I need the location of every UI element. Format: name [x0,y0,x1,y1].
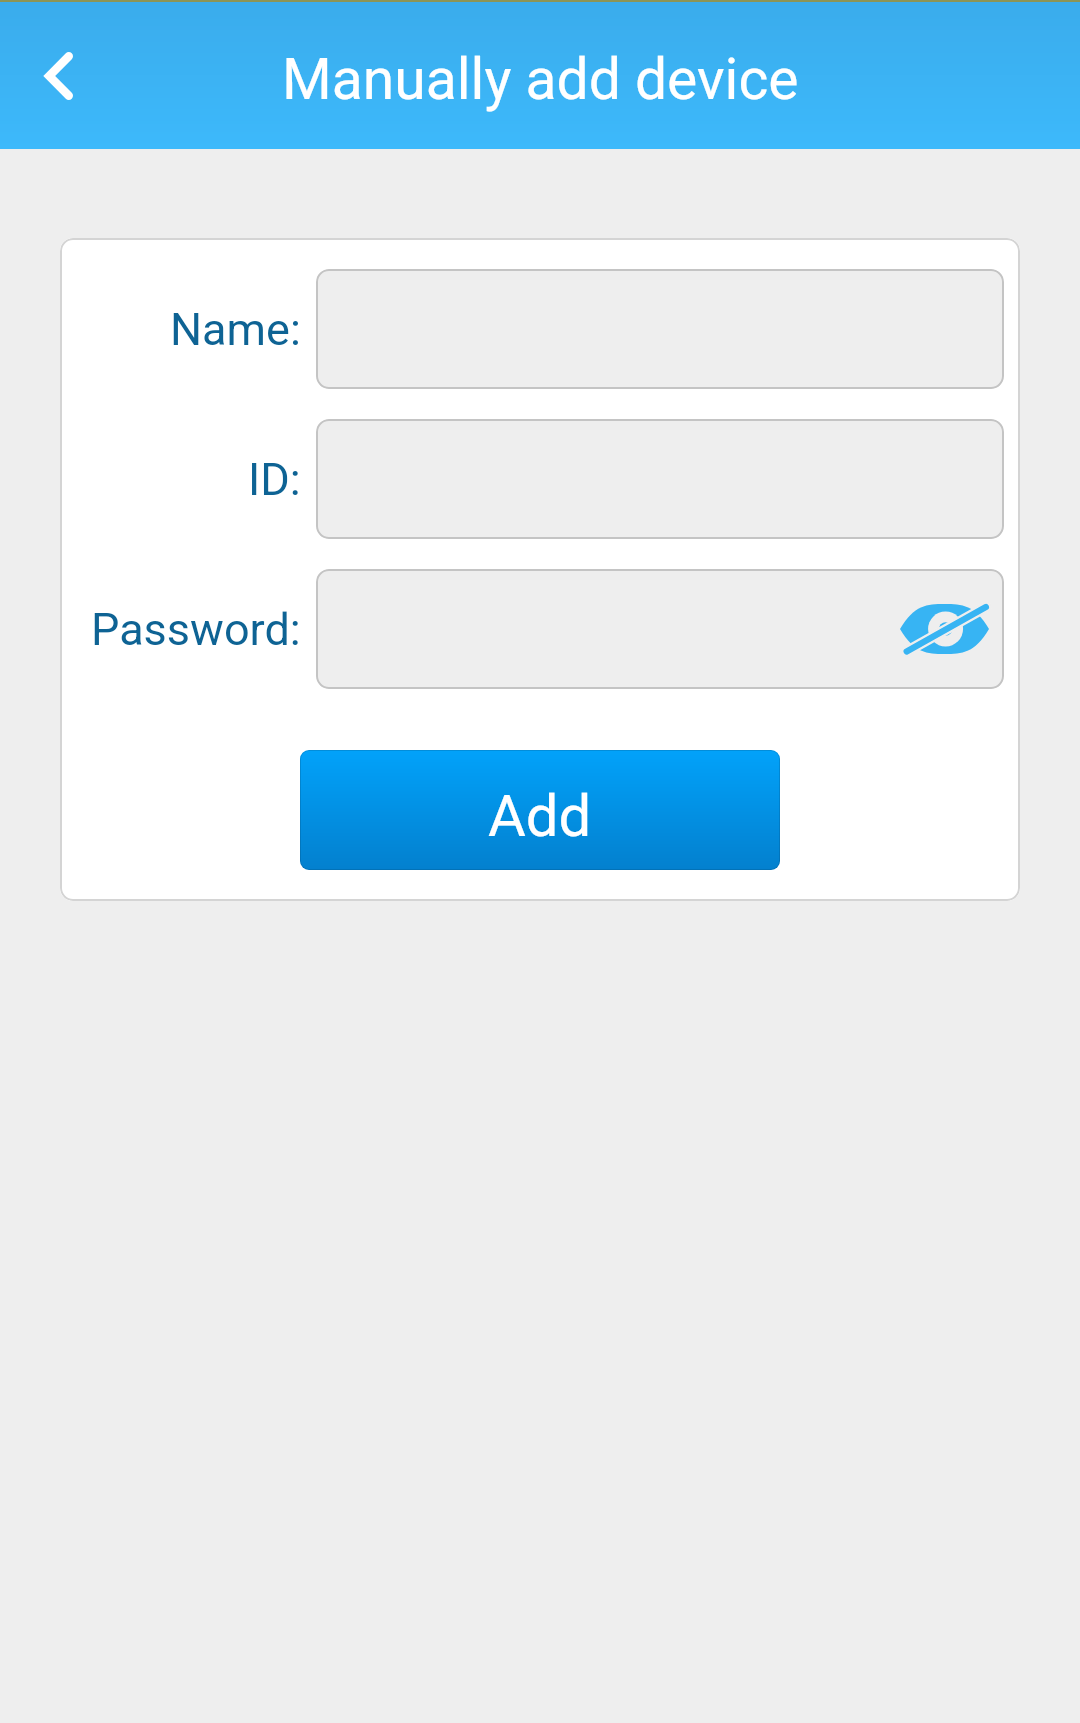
staticText: Name: [170,303,301,356]
staticText: Password: [91,603,301,656]
button[interactable] [316,269,1004,389]
staticText: Manually add device [282,46,799,113]
staticText: Add [488,782,592,850]
staticText: ID: [248,453,301,506]
button[interactable]: Show password [316,569,1004,689]
button[interactable]: Back [0,3,120,149]
button[interactable]: Show password [889,579,999,679]
button[interactable]: Add [300,750,780,870]
button[interactable] [316,419,1004,539]
